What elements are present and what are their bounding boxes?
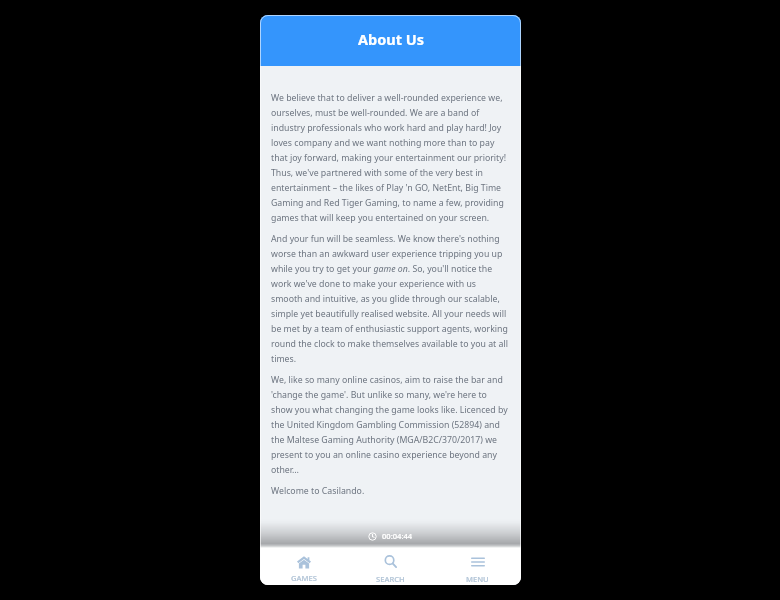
button[interactable]: Menu bbox=[434, 548, 521, 585]
staticText: SEARCH bbox=[376, 574, 405, 584]
staticText: We, like so many online casinos, aim to … bbox=[271, 374, 509, 476]
staticText: Welcome to Casilando. bbox=[271, 485, 365, 497]
button[interactable]: Games bbox=[260, 548, 347, 585]
staticText: And your fun will be seamless. We know t… bbox=[271, 233, 509, 365]
button[interactable]: About Us bbox=[260, 15, 521, 66]
button[interactable]: Search bbox=[347, 548, 434, 585]
staticText: GAMES bbox=[291, 573, 317, 583]
staticText: We believe that to deliver a well-rounde… bbox=[271, 92, 509, 224]
staticText: MENU bbox=[466, 574, 489, 584]
staticText: 00:04:44 bbox=[382, 531, 413, 541]
staticText: About Us bbox=[358, 29, 424, 49]
button[interactable]: Session timer bbox=[260, 519, 521, 548]
